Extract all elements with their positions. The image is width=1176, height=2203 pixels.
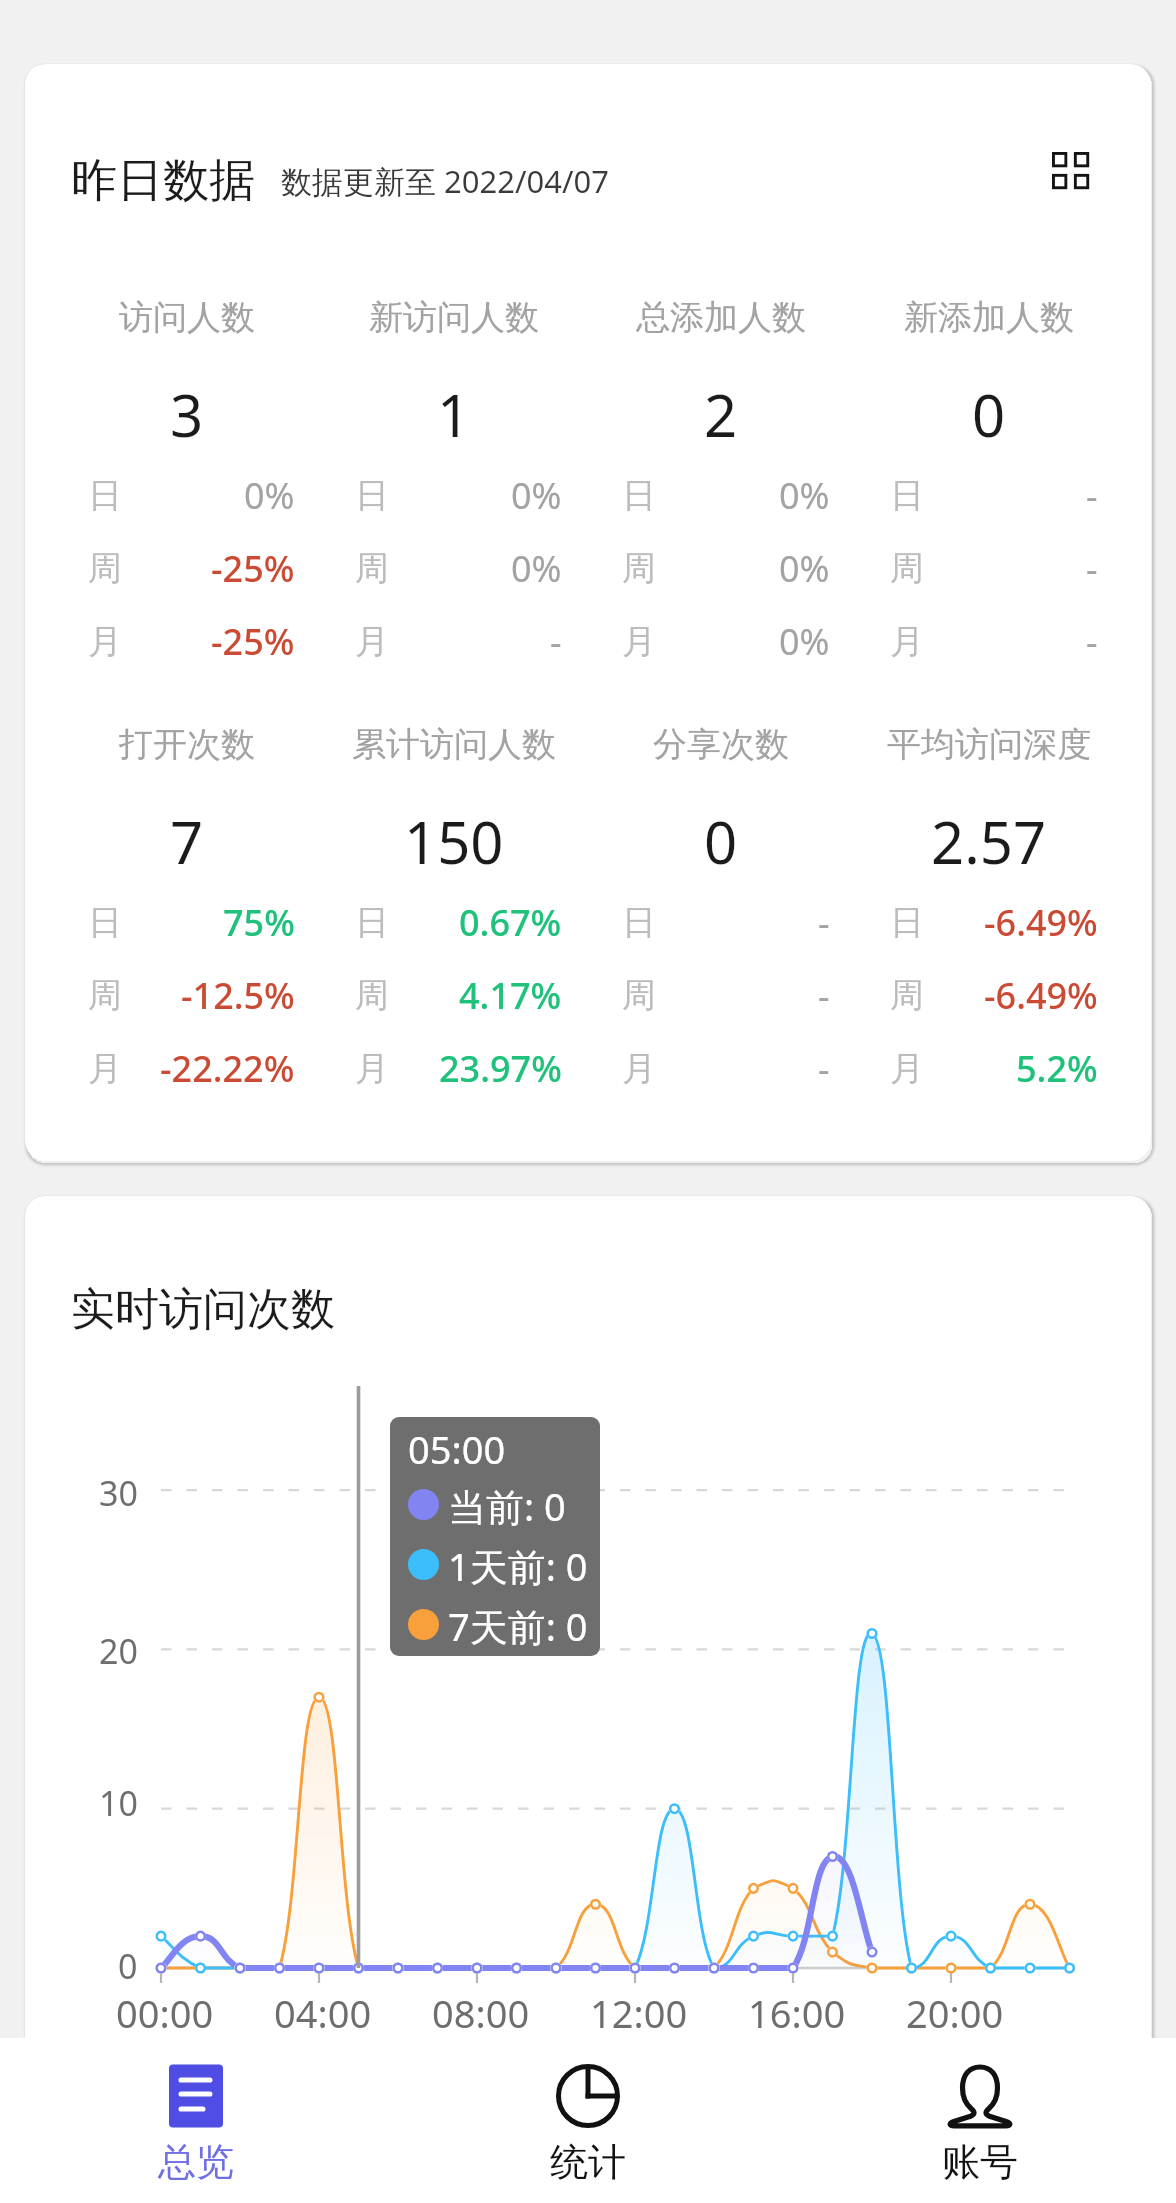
staticText: 150 (404, 802, 504, 881)
staticText: 账号 (942, 2138, 1018, 2186)
staticText: 周 (890, 547, 924, 590)
staticText: 新访问人数 (369, 296, 539, 339)
staticText: -6.49% (984, 971, 1098, 1020)
staticText: 日 (890, 901, 924, 944)
staticText: 周 (355, 547, 389, 590)
button[interactable]: 打开次数 (53, 723, 320, 1105)
staticText: 0 (704, 802, 738, 881)
staticText: 统计 (550, 2138, 626, 2186)
staticText: 3 (170, 375, 204, 454)
staticText: 1天前: 0 (448, 1540, 588, 1588)
button[interactable]: 总添加人数 (587, 296, 855, 678)
staticText: 16:00 (748, 1987, 846, 2039)
staticText: 04:00 (274, 1987, 372, 2039)
staticText: 总览 (158, 2138, 234, 2186)
staticText: 打开次数 (119, 723, 255, 766)
staticText: 5.2% (1016, 1044, 1098, 1093)
button[interactable]: 平均访问深度 (855, 723, 1123, 1105)
staticText: -22.22% (160, 1044, 295, 1093)
staticText: 数据更新至 2022/04/07 (281, 160, 609, 202)
staticText: 月 (622, 620, 656, 663)
staticText: 总添加人数 (636, 296, 806, 339)
staticText: 实时访问次数 (71, 1282, 335, 1337)
staticText: - (550, 617, 562, 666)
button[interactable]: 新访问人数 (320, 296, 587, 678)
staticText: 12:00 (590, 1987, 688, 2039)
staticText: 日 (355, 474, 389, 517)
staticText: - (1086, 544, 1098, 593)
staticText: 0% (511, 544, 562, 593)
button[interactable]: 累计访问人数 (320, 723, 587, 1105)
staticText: 周 (890, 974, 924, 1017)
staticText: 0.67% (459, 898, 562, 947)
staticText: 日 (622, 901, 656, 944)
staticText: 日 (88, 474, 122, 517)
button[interactable]: 分享次数 (587, 723, 855, 1105)
button[interactable]: 新添加人数 (855, 296, 1123, 678)
staticText: 0 (972, 375, 1006, 454)
staticText: 7 (170, 802, 204, 881)
staticText: -25% (211, 544, 295, 593)
staticText: 23.97% (439, 1044, 562, 1093)
staticText: 月 (890, 1047, 924, 1090)
staticText: 访问人数 (119, 296, 255, 339)
staticText: 00:00 (116, 1987, 214, 2039)
staticText: - (818, 1044, 830, 1093)
staticText: 月 (88, 1047, 122, 1090)
staticText: -12.5% (181, 971, 295, 1020)
staticText: 0% (779, 471, 830, 520)
staticText: 新添加人数 (904, 296, 1074, 339)
staticText: 分享次数 (653, 723, 789, 766)
staticText: 周 (88, 974, 122, 1017)
staticText: 平均访问深度 (887, 723, 1091, 766)
staticText: 日 (622, 474, 656, 517)
staticText: 昨日数据 (71, 152, 255, 210)
button[interactable]: Grid view (1039, 139, 1101, 201)
staticText: 周 (88, 547, 122, 590)
staticText: 日 (890, 474, 924, 517)
staticText: 0% (511, 471, 562, 520)
staticText: 75% (223, 898, 295, 947)
staticText: 当前: 0 (448, 1480, 566, 1528)
staticText: 4.17% (459, 971, 562, 1020)
staticText: - (818, 898, 830, 947)
button[interactable]: 总览 (0, 2038, 392, 2203)
staticText: 0% (779, 544, 830, 593)
staticText: 1 (437, 375, 471, 454)
staticText: 月 (890, 620, 924, 663)
staticText: 日 (88, 901, 122, 944)
staticText: 月 (355, 620, 389, 663)
staticText: 月 (88, 620, 122, 663)
button[interactable]: 访问人数 (53, 296, 320, 678)
staticText: 10 (99, 1780, 138, 1826)
staticText: - (818, 971, 830, 1020)
staticText: 30 (99, 1470, 138, 1516)
staticText: 20:00 (906, 1987, 1004, 2039)
staticText: 周 (355, 974, 389, 1017)
staticText: 日 (355, 901, 389, 944)
staticText: 0% (779, 617, 830, 666)
staticText: 周 (622, 547, 656, 590)
button[interactable]: 统计 (392, 2038, 784, 2203)
staticText: 2 (704, 375, 738, 454)
staticText: 周 (622, 974, 656, 1017)
staticText: 08:00 (432, 1987, 530, 2039)
button[interactable]: 账号 (784, 2038, 1176, 2203)
staticText: 0 (118, 1943, 138, 1989)
staticText: 20 (99, 1628, 138, 1674)
staticText: -6.49% (984, 898, 1098, 947)
staticText: - (1086, 617, 1098, 666)
staticText: -25% (211, 617, 295, 666)
staticText: 月 (355, 1047, 389, 1090)
staticText: 月 (622, 1047, 656, 1090)
staticText: 05:00 (408, 1423, 506, 1475)
staticText: 0% (244, 471, 295, 520)
staticText: 累计访问人数 (352, 723, 556, 766)
staticText: 7天前: 0 (448, 1600, 588, 1648)
staticText: 2.57 (931, 802, 1047, 881)
staticText: - (1086, 471, 1098, 520)
